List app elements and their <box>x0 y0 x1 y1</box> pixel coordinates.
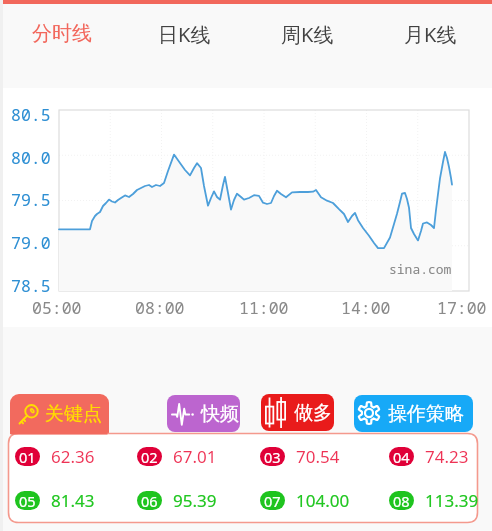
staticText: 快频 <box>201 402 239 426</box>
button[interactable]: 操作策略 <box>354 395 473 432</box>
staticText: 05:00 <box>32 296 82 318</box>
staticText: 02 <box>141 447 158 466</box>
staticText: 67.01 <box>173 445 217 468</box>
staticText: sina.com <box>389 260 452 278</box>
staticText: 03 <box>264 447 281 466</box>
staticText: 关键点 <box>45 402 102 426</box>
staticText: 104.00 <box>296 489 350 512</box>
button[interactable]: 06 <box>137 489 217 512</box>
staticText: 07 <box>264 491 281 510</box>
staticText: 79.5 <box>11 188 51 210</box>
staticText: 80.0 <box>11 146 51 168</box>
button[interactable]: 02 <box>137 445 217 468</box>
staticText: 06 <box>141 491 158 510</box>
staticText: 74.23 <box>425 445 469 468</box>
staticText: 分时线 <box>32 21 92 46</box>
staticText: 08 <box>393 491 410 510</box>
staticText: 113.39 <box>425 489 479 512</box>
button[interactable]: 月K线 <box>369 4 492 87</box>
staticText: 95.39 <box>173 489 217 512</box>
staticText: 08:00 <box>135 296 185 318</box>
staticText: 78.5 <box>11 274 51 296</box>
staticText: 14:00 <box>341 296 391 318</box>
staticText: 17:00 <box>437 296 487 318</box>
staticText: 04 <box>393 447 410 466</box>
button[interactable]: 快频 <box>167 395 240 432</box>
staticText: 周K线 <box>281 21 334 48</box>
staticText: 操作策略 <box>388 402 464 426</box>
button[interactable]: 03 <box>260 445 340 468</box>
button[interactable]: 04 <box>389 445 469 468</box>
staticText: 70.54 <box>296 445 340 468</box>
staticText: 79.0 <box>11 231 51 253</box>
button[interactable]: 关键点 <box>10 394 109 434</box>
staticText: 81.43 <box>51 489 95 512</box>
staticText: 05 <box>19 491 36 510</box>
button[interactable]: 做多 <box>261 394 334 431</box>
staticText: 日K线 <box>158 21 211 48</box>
staticText: 01 <box>19 447 36 466</box>
staticText: 62.36 <box>51 445 95 468</box>
button[interactable]: 08 <box>389 489 479 512</box>
button[interactable]: 07 <box>260 489 350 512</box>
staticText: 80.5 <box>11 103 51 125</box>
staticText: 做多 <box>294 401 332 425</box>
button[interactable]: 日K线 <box>123 4 246 87</box>
staticText: 月K线 <box>404 21 457 48</box>
button[interactable]: 分时线 <box>0 4 123 87</box>
staticText: 11:00 <box>239 296 289 318</box>
button[interactable]: 05 <box>15 489 95 512</box>
button[interactable]: 周K线 <box>246 4 369 87</box>
button[interactable]: 01 <box>15 445 95 468</box>
